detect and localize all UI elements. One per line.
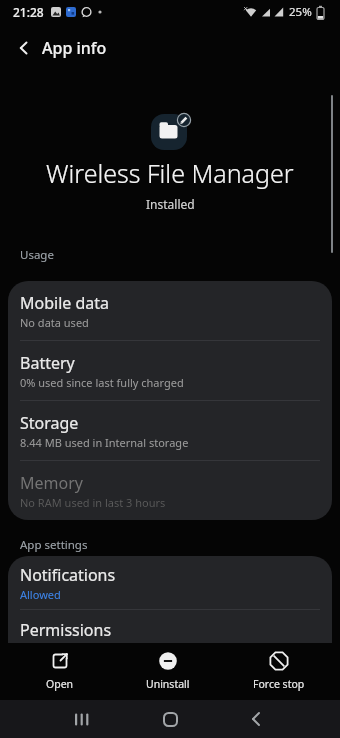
- button[interactable]: Force stop: [234, 651, 324, 691]
- button[interactable]: Storage: [8, 401, 332, 461]
- staticText: Memory: [20, 472, 83, 494]
- staticText: App settings: [20, 537, 88, 553]
- staticText: 0% used since last fully charged: [20, 375, 184, 390]
- staticText: Installed: [146, 196, 195, 212]
- staticText: Open: [46, 677, 74, 691]
- staticText: Force stop: [253, 677, 305, 691]
- button[interactable]: Memory: [8, 461, 332, 520]
- button[interactable]: [156, 705, 184, 733]
- button[interactable]: [242, 705, 270, 733]
- staticText: Notifications: [20, 564, 116, 586]
- staticText: Wireless File Manager: [46, 156, 294, 190]
- staticText: Uninstall: [146, 677, 190, 691]
- staticText: Battery: [20, 352, 75, 374]
- button[interactable]: Open: [15, 651, 105, 691]
- button[interactable]: Permissions: [8, 610, 332, 643]
- staticText: Allowed: [20, 587, 61, 602]
- staticText: No data used: [20, 315, 89, 330]
- staticText: No RAM used in last 3 hours: [20, 495, 166, 510]
- button[interactable]: Notifications: [8, 556, 332, 610]
- staticText: Mobile data: [20, 292, 110, 314]
- staticText: Permissions: [20, 619, 112, 641]
- staticText: Storage: [20, 412, 79, 434]
- button[interactable]: [68, 705, 96, 733]
- button[interactable]: Battery: [8, 341, 332, 401]
- button[interactable]: [8, 32, 40, 64]
- staticText: Usage: [20, 247, 54, 263]
- staticText: 25%: [289, 4, 312, 20]
- staticText: 8.44 MB used in Internal storage: [20, 435, 189, 450]
- staticText: App info: [42, 37, 107, 59]
- button[interactable]: Uninstall: [123, 651, 213, 691]
- button[interactable]: Mobile data: [8, 281, 332, 341]
- staticText: 21:28: [13, 4, 44, 20]
